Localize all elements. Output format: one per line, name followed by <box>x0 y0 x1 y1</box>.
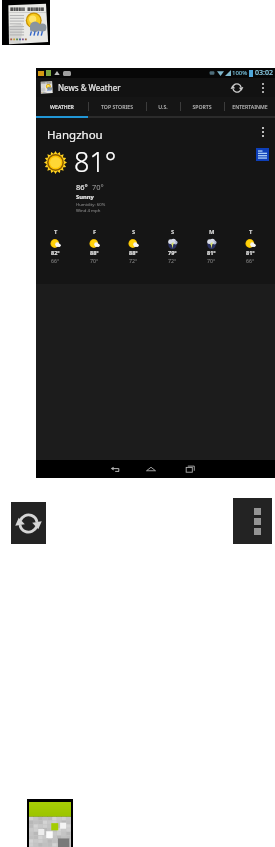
staticText: 66° <box>246 257 255 264</box>
staticText: Hangzhou <box>47 127 103 143</box>
staticText: 70° <box>90 257 99 264</box>
staticText: S <box>171 228 175 236</box>
button[interactable]: T <box>231 228 270 264</box>
staticText: 66° <box>51 257 60 264</box>
button[interactable]: News & Weather <box>36 78 275 97</box>
button[interactable]: Home <box>137 460 164 478</box>
staticText: S <box>132 228 136 236</box>
staticText: 81° <box>246 249 255 256</box>
staticText: M <box>209 228 215 236</box>
staticText: TOP STORIES <box>101 103 133 110</box>
staticText: T <box>54 228 58 236</box>
button[interactable]: News and Weather app icon <box>2 0 50 45</box>
staticText: SPORTS <box>192 103 212 110</box>
button[interactable]: Refresh <box>11 502 46 544</box>
staticText: WEATHER <box>50 103 74 110</box>
staticText: 79° <box>168 249 177 256</box>
button[interactable]: SPORTS <box>180 97 224 118</box>
button[interactable]: S <box>114 228 153 264</box>
button[interactable]: News <box>256 148 269 161</box>
staticText: ENTERTAINME <box>232 103 268 110</box>
staticText: News & Weather <box>58 82 121 93</box>
button[interactable]: More options <box>233 498 272 544</box>
staticText: 72° <box>129 257 138 264</box>
staticText: 81° <box>207 249 216 256</box>
button[interactable]: Back <box>101 460 128 478</box>
staticText: Humidity: 60% <box>76 201 106 207</box>
staticText: 03:02 <box>255 68 273 78</box>
staticText: 70° <box>207 257 216 264</box>
staticText: 82° <box>51 249 60 256</box>
staticText: F <box>93 228 97 236</box>
staticText: 70° <box>92 182 104 192</box>
button[interactable]: Recents <box>177 460 204 478</box>
staticText: 100% <box>232 69 248 77</box>
button[interactable]: U.S. <box>146 97 180 118</box>
staticText: 86° <box>76 182 88 192</box>
button[interactable]: T <box>36 228 75 264</box>
staticText: 72° <box>168 257 177 264</box>
staticText: U.S. <box>158 103 168 110</box>
button[interactable]: M <box>192 228 231 264</box>
button[interactable]: Weather options <box>258 123 268 141</box>
staticText: Wind 4 mph <box>76 207 101 213</box>
button[interactable]: ENTERTAINME <box>224 97 275 118</box>
button[interactable]: S <box>153 228 192 264</box>
button[interactable]: WEATHER <box>36 97 88 118</box>
staticText: 88° <box>129 249 138 256</box>
button[interactable]: TOP STORIES <box>88 97 146 118</box>
staticText: T <box>249 228 253 236</box>
staticText: Sunny <box>76 193 94 201</box>
button[interactable]: F <box>75 228 114 264</box>
staticText: 81° <box>74 143 117 180</box>
staticText: 88° <box>90 249 99 256</box>
button[interactable]: App icon <box>27 799 73 847</box>
